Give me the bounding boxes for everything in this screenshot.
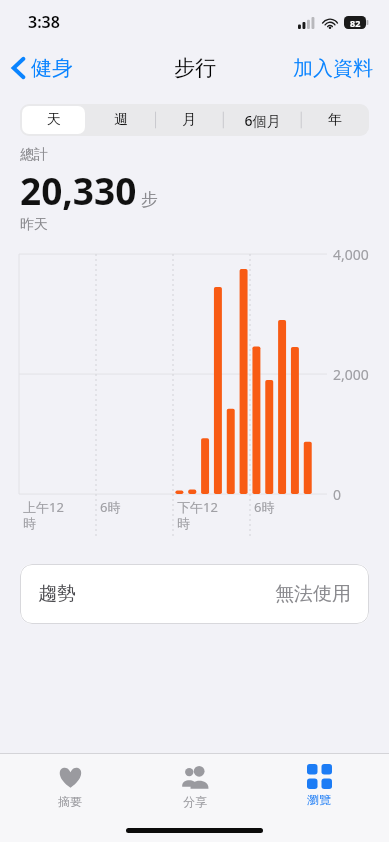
button[interactable]: 瀏覽 (264, 762, 374, 809)
staticText: 3:38 (28, 11, 60, 33)
staticText: 6個月 (244, 111, 281, 130)
staticText: 20,330 (20, 165, 137, 215)
staticText: 0 (333, 485, 342, 504)
staticText: 天 (47, 111, 61, 129)
button[interactable]: 加入資料 (277, 50, 389, 87)
button[interactable]: 分享 (140, 762, 250, 811)
staticText: 週 (114, 111, 128, 129)
button[interactable]: 週 (89, 106, 153, 134)
staticText: 步 (141, 189, 158, 210)
staticText: 健身 (31, 55, 73, 81)
other: 摘要 (57, 764, 84, 791)
staticText: 4,000 (333, 245, 369, 264)
staticText: 趨勢 (38, 582, 76, 606)
staticText: 上午12 時 (23, 498, 64, 532)
button[interactable]: 摘要 (15, 762, 125, 811)
button[interactable]: 天 (22, 106, 85, 134)
button[interactable]: 趨勢 (20, 564, 369, 624)
staticText: 無法使用 (275, 582, 351, 606)
other: 分享 (179, 764, 211, 791)
staticText: 下午12 時 (177, 498, 218, 532)
other: 瀏覽 (307, 764, 332, 789)
staticText: 6時 (254, 498, 275, 516)
staticText: 昨天 (20, 216, 48, 234)
staticText: 年 (328, 111, 342, 129)
staticText: 瀏覽 (307, 792, 331, 807)
staticText: 月 (182, 111, 196, 129)
staticText: 加入資料 (293, 56, 373, 81)
staticText: 總計 (20, 146, 48, 164)
button[interactable]: 6個月 (225, 106, 299, 134)
button[interactable]: 月 (157, 106, 221, 134)
staticText: 2,000 (333, 365, 369, 384)
staticText: 步行 (174, 55, 216, 81)
staticText: 摘要 (58, 794, 82, 809)
staticText: 分享 (183, 794, 207, 809)
button[interactable]: 年 (303, 106, 367, 134)
staticText: 6時 (100, 498, 121, 516)
staticText: 82 (350, 17, 361, 29)
button[interactable]: 健身 (0, 51, 81, 85)
